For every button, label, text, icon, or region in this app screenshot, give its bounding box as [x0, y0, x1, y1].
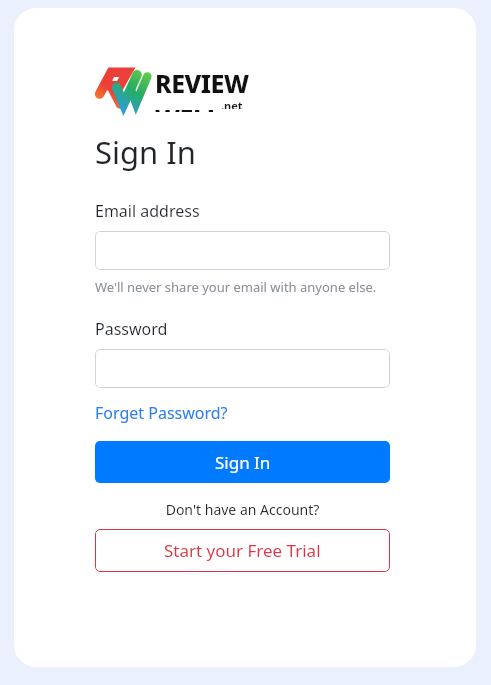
button[interactable]: Start your Free Trial: [95, 529, 390, 572]
staticText: Email address: [95, 200, 200, 222]
staticText: REVIEW: [155, 66, 249, 100]
staticText: .net: [221, 98, 243, 109]
button[interactable]: [95, 231, 390, 270]
staticText: Don't have an Account?: [95, 500, 390, 519]
staticText: WELL: [155, 101, 221, 112]
button[interactable]: [95, 349, 390, 388]
staticText: Forget Password?: [95, 402, 228, 424]
staticText: Sign In: [95, 131, 196, 173]
staticText: We'll never share your email with anyone…: [95, 278, 377, 296]
staticText: Start your Free Trial: [164, 539, 321, 562]
button[interactable]: Forget Password?: [95, 402, 228, 424]
staticText: Sign In: [215, 451, 271, 474]
staticText: Password: [95, 318, 168, 340]
button[interactable]: Sign In: [95, 441, 390, 483]
